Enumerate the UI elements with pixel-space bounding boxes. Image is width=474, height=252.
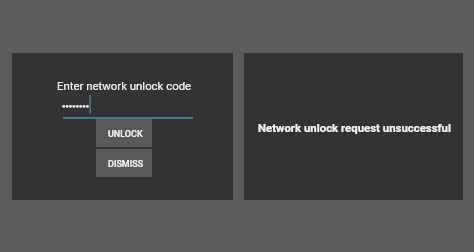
button[interactable]: Network unlock code entry field [50, 93, 194, 119]
button[interactable]: UNLOCK [96, 119, 152, 147]
button[interactable]: DISMISS [96, 149, 152, 177]
staticText: DISMISS [108, 159, 144, 170]
staticText: Enter network unlock code [57, 79, 192, 92]
staticText: UNLOCK [108, 129, 143, 140]
staticText: Network unlock request unsuccessful [258, 121, 452, 134]
